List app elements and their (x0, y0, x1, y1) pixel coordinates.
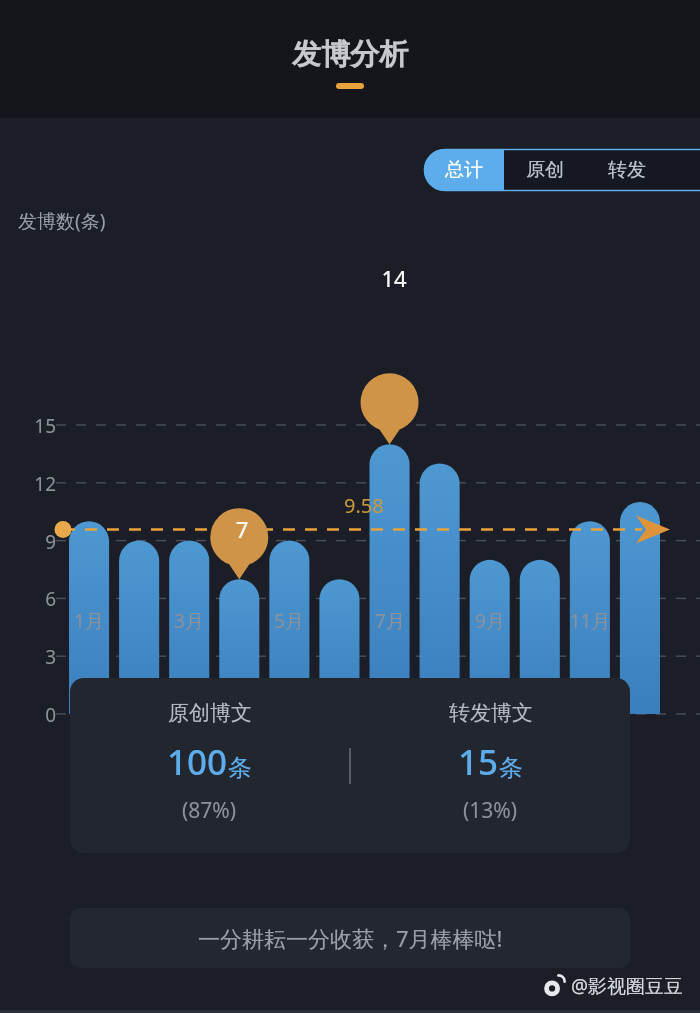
staticText: @影视圈豆豆 (571, 973, 684, 999)
staticText: 原创 (526, 158, 564, 182)
button[interactable]: 原创 (504, 149, 586, 191)
staticText: 9月 (460, 608, 520, 634)
staticText: 总计 (445, 158, 483, 182)
staticText: 5月 (259, 608, 319, 634)
staticText: 6 (22, 586, 56, 612)
button[interactable]: 一分耕耘一分收获，7月棒棒哒! (70, 908, 630, 968)
staticText: (87%) (182, 796, 237, 825)
staticText: 发博分析 (292, 36, 408, 73)
staticText: 发博数(条) (18, 208, 106, 234)
staticText: 一分耕耘一分收获，7月棒棒哒! (198, 923, 503, 953)
staticText: 12 (22, 471, 56, 497)
staticText: 7 (222, 514, 262, 544)
staticText: 1月 (59, 608, 119, 634)
staticText: 9 (22, 529, 56, 555)
staticText: 11月 (560, 608, 620, 634)
staticText: 条 (499, 753, 523, 783)
staticText: 转发博文 (449, 700, 533, 726)
staticText: 3 (22, 644, 56, 670)
staticText: 3月 (159, 608, 219, 634)
button[interactable]: 总计 (424, 149, 504, 191)
button[interactable]: 转发 (586, 149, 668, 191)
staticText: (13%) (463, 796, 518, 825)
staticText: 14 (371, 263, 417, 293)
staticText: 原创博文 (168, 700, 252, 726)
staticText: 条 (228, 753, 252, 783)
staticText: 15 (458, 738, 499, 786)
staticText: 15 (22, 413, 56, 439)
staticText: 100 (167, 738, 228, 786)
staticText: 7月 (360, 608, 420, 634)
button[interactable]: 原创博文 (70, 678, 630, 853)
staticText: 0 (22, 702, 56, 728)
staticText: 转发 (608, 158, 646, 182)
other: Weibo (542, 974, 566, 998)
staticText: 9.58 (344, 492, 384, 519)
